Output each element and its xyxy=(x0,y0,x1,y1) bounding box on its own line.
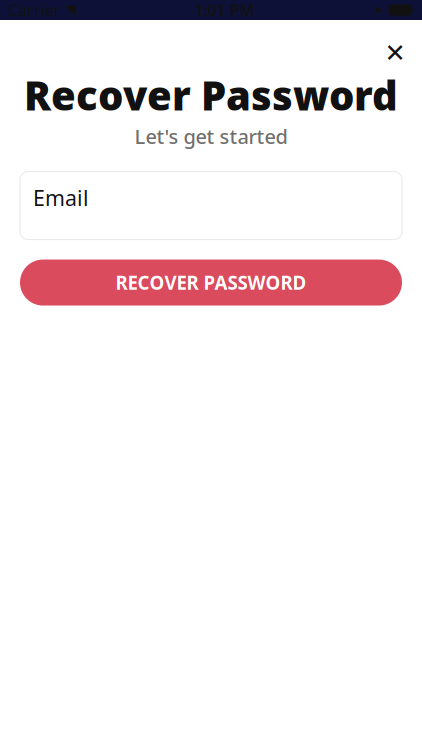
button[interactable]: RECOVER PASSWORD xyxy=(20,260,402,306)
staticText: Email xyxy=(33,184,89,212)
staticText: ◥ xyxy=(65,2,76,18)
button[interactable]: Email xyxy=(20,172,402,240)
staticText: 1:01 PM xyxy=(194,0,254,21)
button[interactable]: Close xyxy=(373,31,417,75)
staticText: RECOVER PASSWORD xyxy=(115,270,306,295)
staticText: ➤ xyxy=(373,2,384,17)
staticText: Carrier xyxy=(8,0,61,21)
staticText: Let's get started xyxy=(134,123,287,150)
staticText: ✕ xyxy=(384,39,405,67)
staticText: Recover Password xyxy=(24,68,398,121)
